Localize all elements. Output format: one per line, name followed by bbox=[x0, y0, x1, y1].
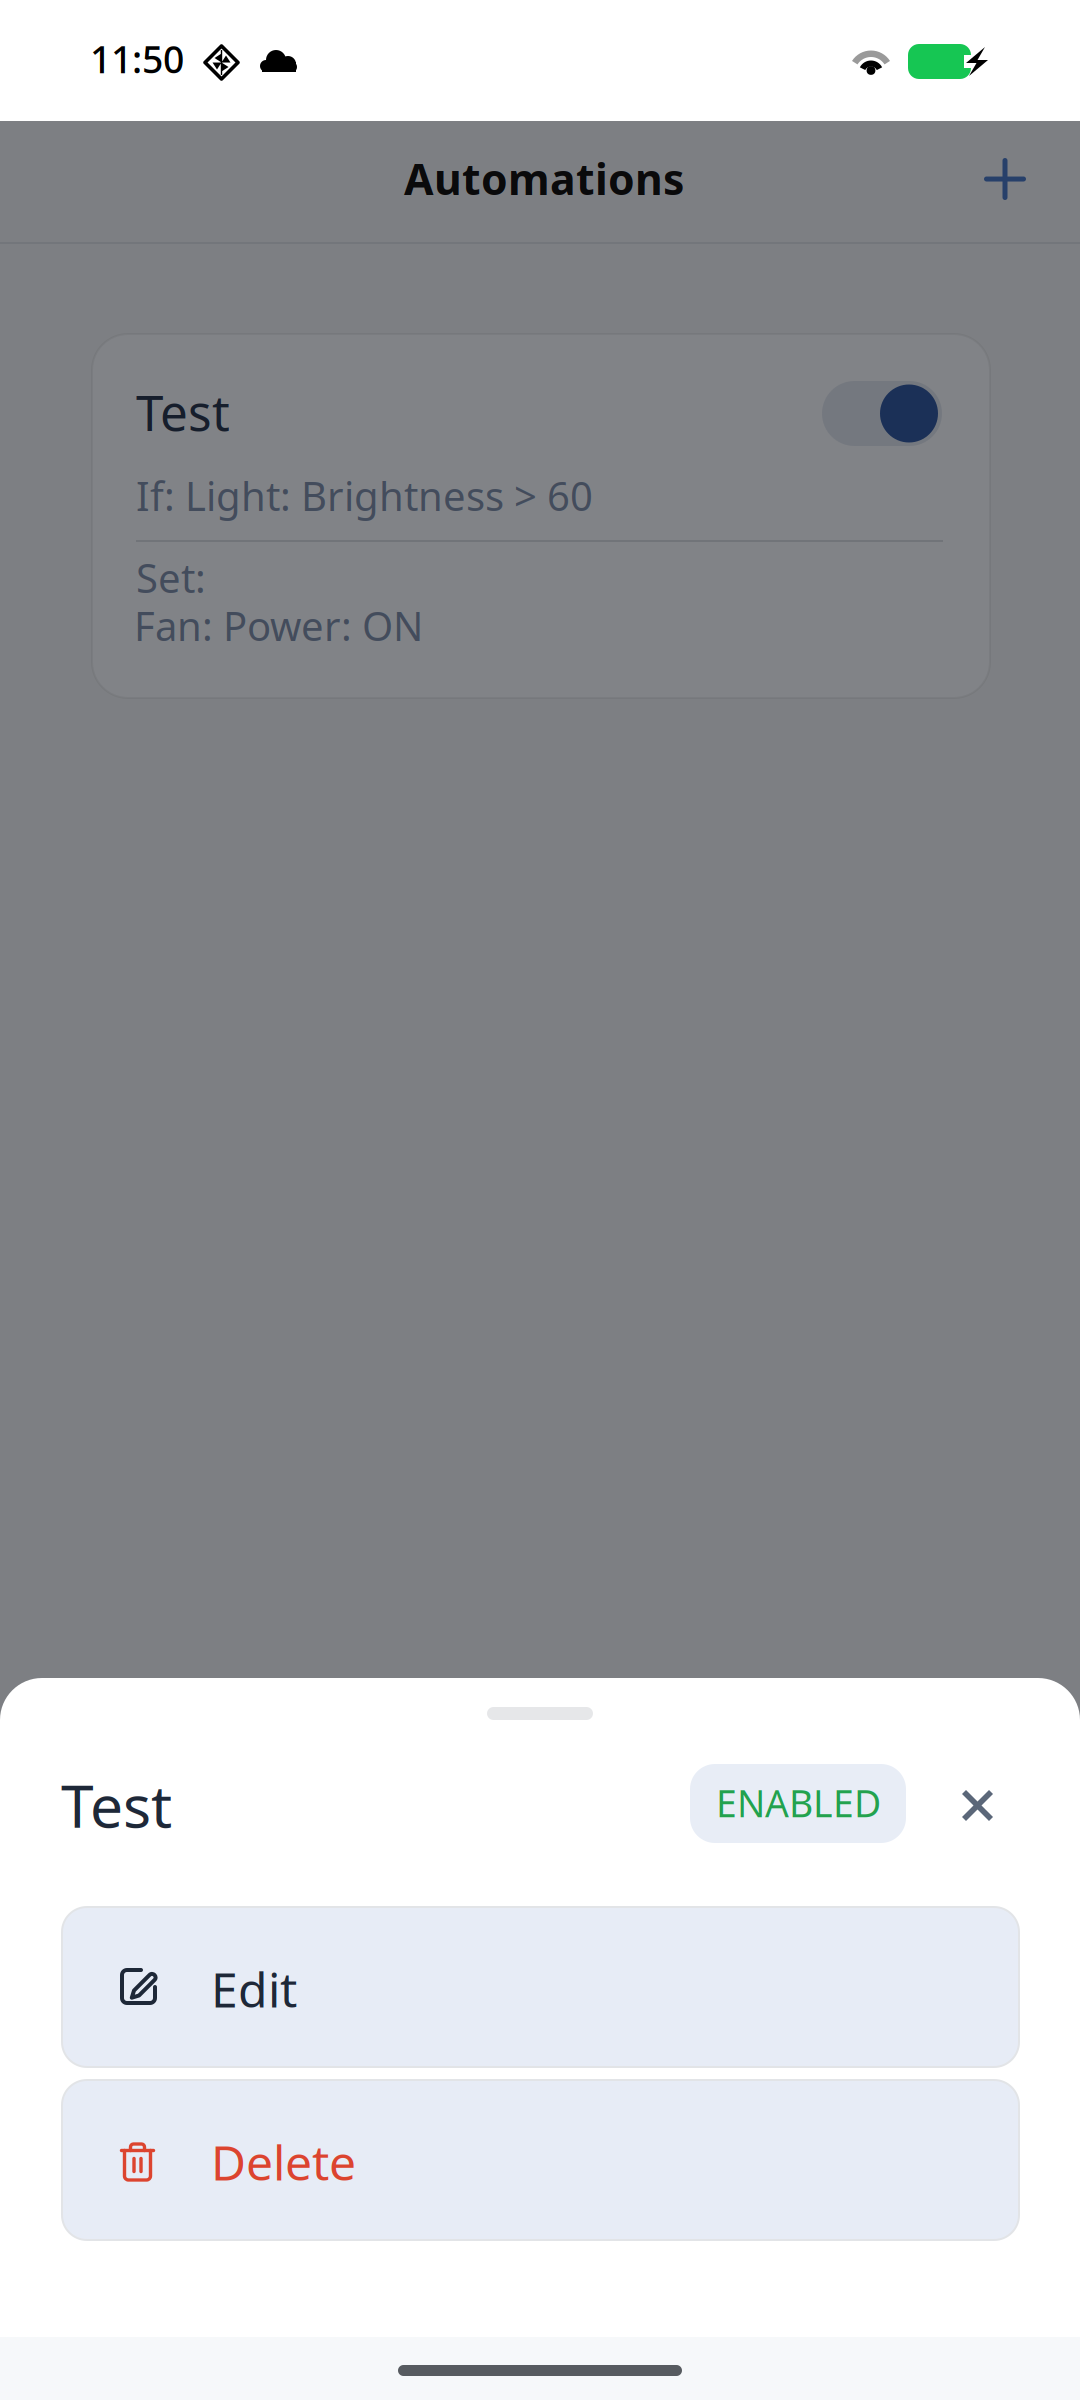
button[interactable]: Close bbox=[936, 1764, 1019, 1847]
staticText: Set: bbox=[136, 551, 206, 604]
button[interactable]: Edit bbox=[62, 1907, 1019, 2067]
button[interactable]: Add automation bbox=[960, 134, 1050, 224]
button[interactable]: Delete bbox=[62, 2080, 1019, 2240]
button[interactable]: ENABLED bbox=[690, 1764, 906, 1843]
staticText: Edit bbox=[211, 1957, 297, 2021]
staticText: Fan: Power: ON bbox=[134, 599, 423, 652]
staticText: Automations bbox=[404, 150, 684, 207]
staticText: ENABLED bbox=[716, 1778, 881, 1828]
staticText: Test bbox=[61, 1766, 172, 1844]
staticText: 11:50 bbox=[90, 34, 184, 84]
staticText: If: Light: Brightness > 60 bbox=[136, 469, 593, 522]
staticText: Test bbox=[136, 379, 230, 444]
button[interactable]: Toggle automation bbox=[822, 381, 942, 446]
staticText: Delete bbox=[211, 2130, 356, 2194]
